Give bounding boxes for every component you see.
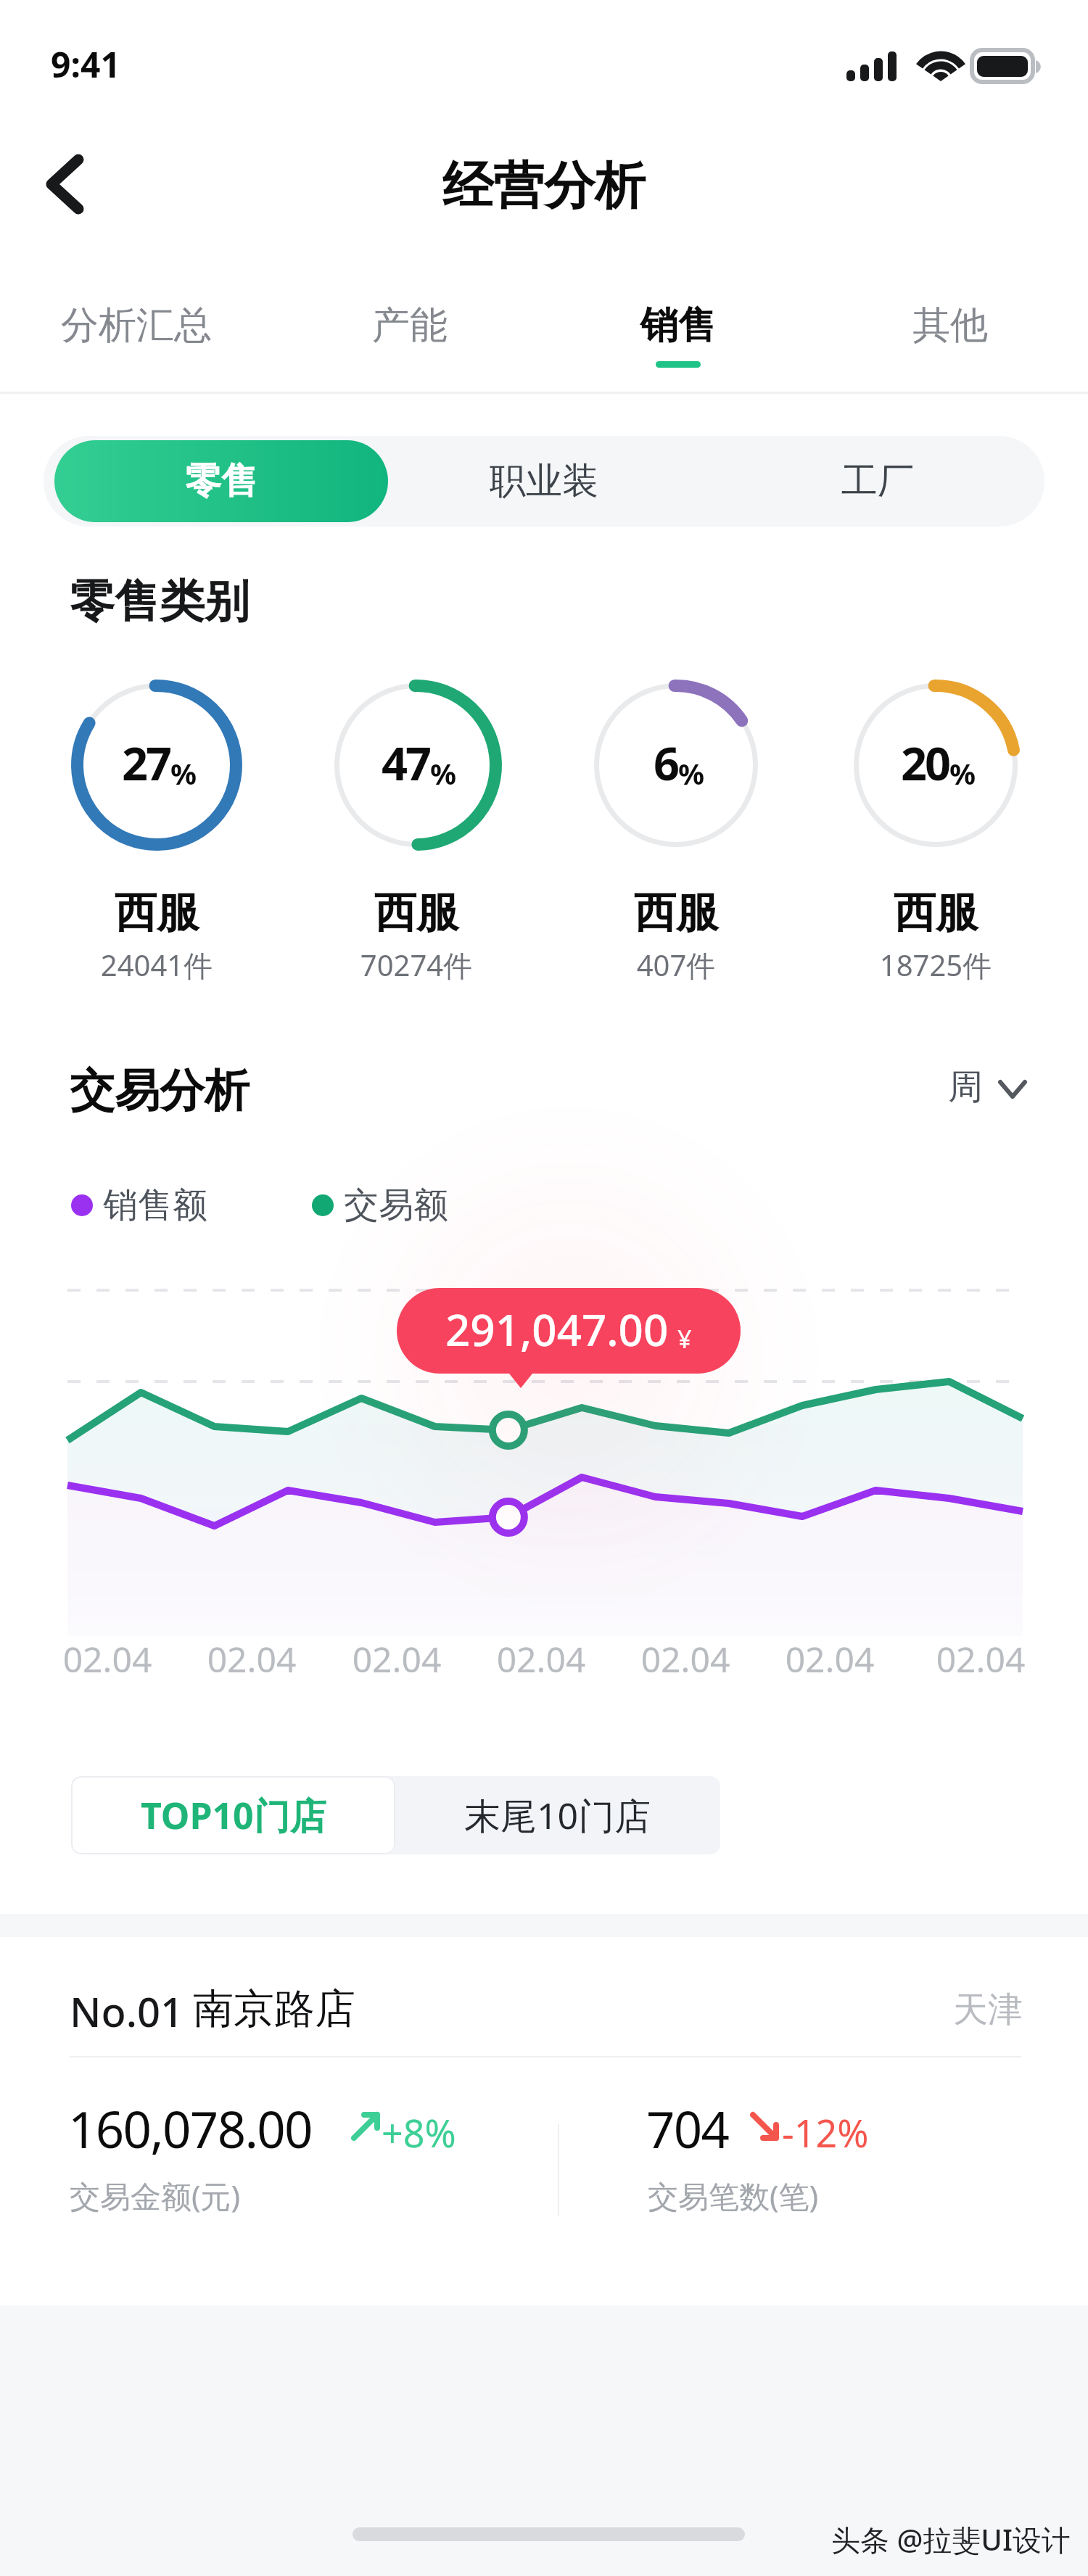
staticText: 南京路店 [193, 1983, 355, 2035]
staticText: 周 [948, 1065, 983, 1109]
staticText: 02.04 [165, 1635, 339, 1683]
staticText: TOP10门店 [141, 1791, 326, 1840]
button[interactable]: TOP10门店 [71, 1776, 395, 1854]
staticText: 704 [646, 2094, 729, 2163]
staticText: % [678, 754, 705, 793]
staticText: 02.04 [454, 1635, 628, 1683]
staticText: 02.04 [310, 1635, 484, 1683]
staticText: 分析汇总 [61, 302, 212, 350]
staticText: 18725件 [827, 945, 1044, 985]
staticText: 其他 [912, 302, 988, 350]
staticText: 西服 [827, 886, 1044, 939]
staticText: 产能 [372, 302, 448, 350]
button[interactable]: 周 [948, 1063, 1027, 1115]
staticText: ¥ [677, 1322, 692, 1355]
staticText: 6 [654, 732, 678, 794]
staticText: 407件 [567, 945, 785, 985]
staticText: 70274件 [308, 945, 525, 985]
staticText: 160,078.00 [68, 2094, 312, 2163]
staticText: 02.04 [598, 1635, 772, 1683]
staticText: 交易笔数(笔) [648, 2175, 819, 2216]
staticText: % [430, 754, 457, 793]
staticText: 销售 [640, 302, 716, 350]
staticText: 销售额 [103, 1184, 207, 1227]
staticText: 经营分析 [0, 154, 1088, 218]
button[interactable]: 末尾10门店 [395, 1776, 720, 1854]
staticText: 47 [382, 732, 430, 794]
staticText: 02.04 [20, 1635, 194, 1683]
staticText: 零售类别 [70, 573, 250, 629]
staticText: % [949, 754, 976, 793]
staticText: -12% [782, 2107, 869, 2158]
staticText: 职业装 [490, 458, 598, 504]
staticText: 291,047.00 [445, 1300, 669, 1359]
staticText: % [170, 754, 197, 793]
button[interactable]: 工厂 [711, 436, 1044, 527]
staticText: 9:41 [51, 41, 120, 88]
button[interactable]: 零售 [44, 436, 377, 527]
staticText: 20 [901, 732, 949, 794]
button[interactable]: 其他 [834, 283, 1066, 392]
staticText: No.01 [70, 1983, 184, 2039]
staticText: +8% [382, 2107, 456, 2158]
staticText: 02.04 [894, 1635, 1068, 1683]
staticText: 02.04 [743, 1635, 917, 1683]
button[interactable]: 销售 [562, 283, 794, 392]
staticText: 交易金额(元) [70, 2175, 241, 2216]
staticText: 24041件 [48, 945, 265, 985]
staticText: 零售 [185, 458, 257, 504]
staticText: 末尾10门店 [464, 1791, 651, 1840]
staticText: 交易额 [344, 1184, 448, 1227]
button[interactable]: 产能 [294, 283, 526, 392]
staticText: 工厂 [841, 458, 914, 504]
button[interactable]: 职业装 [377, 436, 711, 527]
staticText: 27 [122, 732, 170, 794]
staticText: 西服 [48, 886, 265, 939]
button[interactable] [0, 1937, 1088, 2305]
staticText: 天津 [798, 1988, 1023, 2031]
button[interactable]: 分析汇总 [20, 283, 252, 392]
staticText: 西服 [308, 886, 525, 939]
staticText: 头条 @拉斐UI设计 [831, 2519, 1071, 2559]
button[interactable]: Back [26, 149, 102, 219]
staticText: 交易分析 [70, 1062, 250, 1119]
staticText: 西服 [567, 886, 785, 939]
